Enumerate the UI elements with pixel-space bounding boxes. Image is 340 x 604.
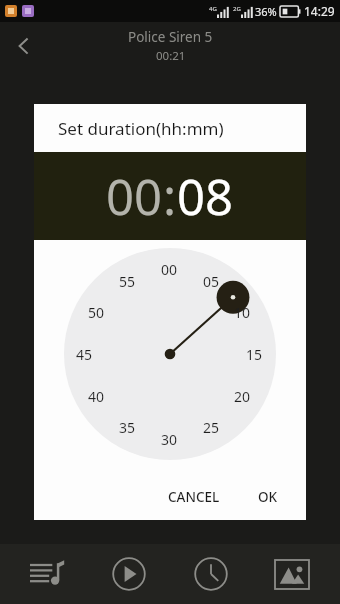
staticText: 50 [88,303,105,322]
staticText: CANCEL [168,488,220,506]
staticText: 35 [119,418,136,437]
staticText: 10 [234,303,251,322]
button[interactable]: Back [0,22,48,70]
button[interactable]: Gallery [259,544,325,604]
staticText: 14:29 [304,3,335,19]
staticText: Police Siren 5 [128,28,213,46]
staticText: 2G [233,5,241,13]
staticText: 36% [255,4,277,19]
button[interactable]: 00 [106,163,163,230]
staticText: 25 [203,418,220,437]
button[interactable]: Timer [178,544,244,604]
staticText: : [163,163,177,230]
button[interactable]: Play [96,544,162,604]
staticText: 00 [161,260,178,279]
button[interactable]: CANCEL [158,482,230,512]
staticText: 40 [88,387,105,406]
staticText: 30 [161,430,178,449]
staticText: Set duration(hh:mm) [58,117,224,140]
button[interactable]: 08 [177,163,234,230]
button[interactable]: 00 [64,248,276,460]
staticText: 00:21 [156,48,186,64]
staticText: 20 [234,387,251,406]
staticText: OK [258,488,278,506]
button[interactable]: OK [248,482,288,512]
staticText: 45 [76,345,93,364]
staticText: 4G [209,5,217,13]
staticText: 55 [119,272,136,291]
staticText: 05 [203,272,220,291]
button[interactable]: Playlist [15,544,81,604]
staticText: 15 [246,345,263,364]
